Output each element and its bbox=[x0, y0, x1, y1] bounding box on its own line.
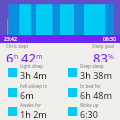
button[interactable]: In bed for bbox=[60, 82, 120, 102]
button[interactable]: Light sleep bbox=[0, 62, 60, 82]
staticText: m bbox=[36, 52, 43, 62]
staticText: In bed for bbox=[80, 83, 101, 89]
staticText: Light sleep bbox=[20, 63, 44, 69]
staticText: Fell asleep in bbox=[20, 83, 48, 89]
staticText: h bbox=[14, 52, 21, 62]
staticText: 42 bbox=[21, 49, 36, 62]
staticText: 1h 2m bbox=[20, 108, 47, 120]
button[interactable]: Woke up bbox=[60, 102, 120, 120]
button[interactable]: Awake for bbox=[0, 102, 60, 120]
button[interactable]: Deep sleep bbox=[60, 62, 120, 82]
staticText: Awake for bbox=[20, 102, 42, 108]
staticText: Sleep goal bbox=[92, 43, 114, 49]
staticText: 6m bbox=[20, 89, 34, 101]
staticText: 06:30 bbox=[103, 36, 116, 43]
staticText: 6h 48m bbox=[80, 89, 112, 101]
staticText: 6 bbox=[6, 49, 14, 62]
staticText: 3h 38m bbox=[80, 69, 112, 81]
button[interactable]: Fell asleep in bbox=[0, 82, 60, 102]
staticText: 83 bbox=[93, 49, 108, 62]
staticText: Deep sleep bbox=[80, 63, 104, 69]
staticText: Woke up bbox=[80, 102, 99, 108]
staticText: 3h 4m bbox=[20, 69, 47, 81]
staticText: Chris slept bbox=[6, 43, 29, 49]
staticText: 6:30 bbox=[80, 108, 98, 120]
staticText: 23:42 bbox=[4, 36, 17, 43]
staticText: % bbox=[108, 52, 114, 62]
